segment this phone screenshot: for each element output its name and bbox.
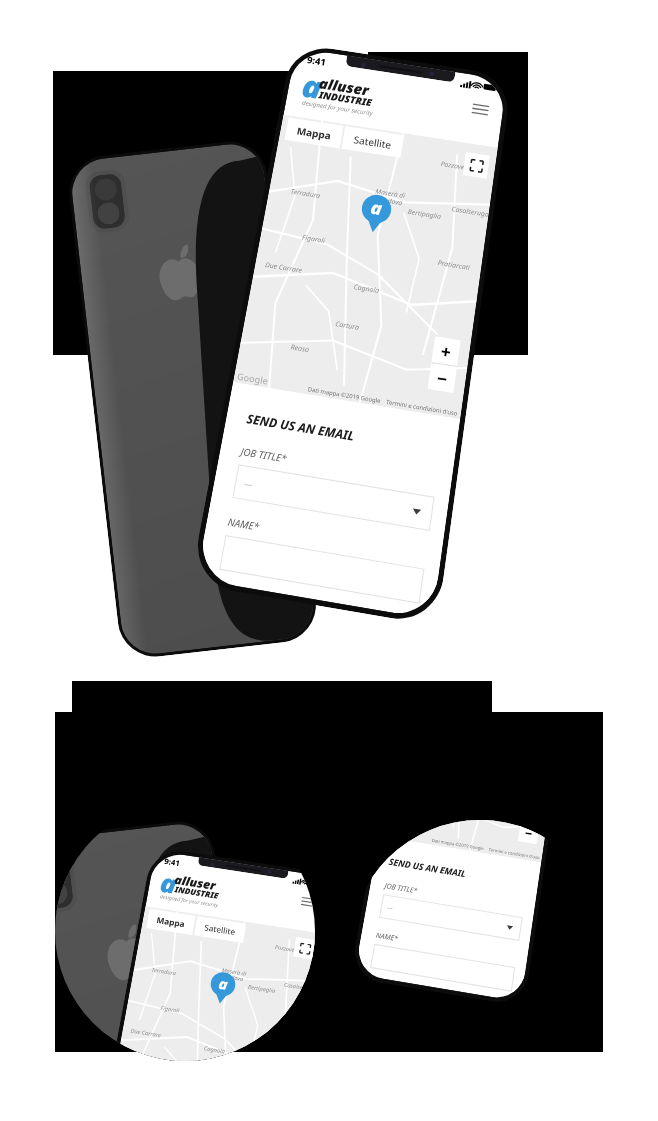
button[interactable]: Menu [297, 892, 319, 913]
staticText: Casalserugo [536, 708, 563, 719]
button[interactable]: Fullscreen [463, 152, 490, 179]
staticText: INDUSTRIE [174, 884, 219, 901]
staticText: SEND US AN EMAIL [245, 410, 356, 444]
staticText: Maserà di [481, 696, 504, 706]
staticText: Padova [484, 701, 502, 710]
staticText: a [217, 973, 230, 994]
button[interactable] [370, 944, 515, 992]
staticText: Padova [224, 973, 244, 983]
button[interactable]: Zoom in [431, 336, 461, 366]
staticText: Pozzoveggiani [440, 159, 484, 175]
staticText: a [299, 65, 326, 108]
staticText: Google [236, 370, 269, 387]
staticText: − [435, 366, 449, 391]
staticText: Bertipaglia [247, 983, 277, 995]
staticText: Padova [379, 195, 404, 208]
button[interactable]: --- [232, 464, 435, 531]
staticText: Due Carrare [264, 260, 303, 276]
staticText: Figaroli [301, 233, 326, 246]
staticText: Termini e condizioni d'uso [488, 847, 540, 861]
staticText: + [439, 339, 453, 364]
staticText: Pratiarcati [272, 1025, 299, 1037]
button[interactable]: Zoom out [427, 363, 457, 393]
staticText: Bertipaglia [505, 710, 530, 720]
staticText: Maserà di [221, 966, 248, 978]
staticText: Bertipaglia [407, 207, 442, 222]
staticText: designed for your security [301, 98, 373, 117]
staticText: Termini e condizioni d'uso [386, 398, 458, 418]
staticText: Terradura [290, 187, 321, 201]
staticText: − [524, 824, 534, 842]
staticText: a [158, 865, 180, 901]
button[interactable]: Satellite [203, 917, 238, 942]
button[interactable] [219, 535, 424, 604]
staticText: Casalserugo [283, 981, 316, 993]
staticText: alluser [173, 871, 218, 893]
staticText: JOB TITLE* [240, 444, 288, 465]
staticText: alluser [318, 73, 371, 99]
staticText: Dati mappa ©2019 Google [307, 385, 382, 405]
staticText: Satellite [203, 922, 237, 938]
button[interactable]: Satellite [352, 128, 394, 156]
staticText: 9:41 [431, 596, 447, 608]
staticText: Mappa [156, 915, 186, 930]
staticText: designed for your security [159, 893, 219, 908]
staticText: 9:41 [306, 53, 327, 68]
staticText: Casalserugo [451, 204, 489, 220]
staticText: --- [386, 903, 394, 912]
staticText: NAME* [375, 930, 399, 943]
staticText: Pozzoveggiani [274, 943, 311, 956]
staticText: Cagnola [203, 1044, 226, 1056]
staticText: Cagnola [353, 282, 380, 296]
staticText: JOB TITLE* [384, 881, 419, 895]
staticText: Mappa [296, 124, 332, 142]
button[interactable]: Zoom out [518, 822, 539, 844]
staticText: Satellite [353, 133, 393, 152]
staticText: Due Carrare [130, 1027, 161, 1039]
staticText: 9:41 [164, 856, 181, 868]
staticText: Dati mappa ©2019 Google [431, 838, 485, 852]
staticText: NAME* [227, 515, 261, 534]
button[interactable]: Mappa [295, 119, 333, 147]
button[interactable]: Menu [467, 98, 493, 122]
staticText: Pratiarcati [437, 258, 471, 273]
staticText: a [369, 195, 384, 221]
staticText: INDUSTRIE [318, 88, 374, 109]
staticText: Terradura [151, 966, 177, 977]
button[interactable]: Fullscreen [293, 937, 316, 960]
staticText: SEND US AN EMAIL [388, 856, 467, 880]
button[interactable]: Mappa [155, 910, 187, 934]
button[interactable]: --- [379, 894, 523, 941]
staticText: Reoso [290, 342, 310, 355]
staticText: Maserà di [375, 187, 406, 201]
staticText: Cartura [334, 319, 360, 333]
